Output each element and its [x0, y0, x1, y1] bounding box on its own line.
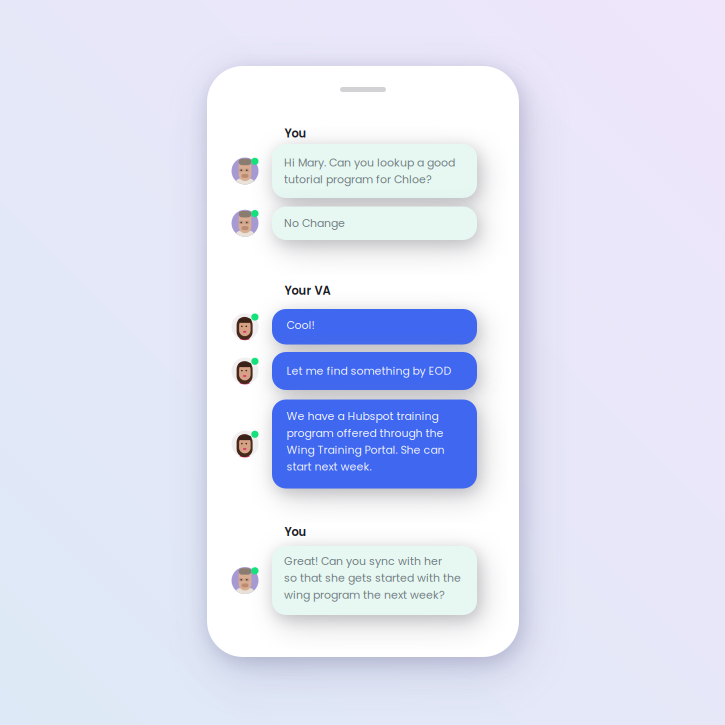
- staticText: Wing Training Portal. She can: [286, 442, 444, 457]
- button[interactable]: Cool!: [207, 66, 519, 657]
- button[interactable]: Hi Mary. Can you lookup a good: [207, 66, 519, 657]
- staticText: start next week.: [286, 459, 371, 474]
- staticText: program offered through the: [286, 425, 443, 441]
- button[interactable]: Great! Can you sync with her: [207, 66, 519, 657]
- staticText: You: [284, 125, 306, 142]
- staticText: Your VA: [284, 283, 330, 299]
- staticText: Great! Can you sync with her: [284, 553, 442, 569]
- staticText: Let me find something by EOD: [286, 363, 451, 379]
- button[interactable]: We have a Hubspot training: [207, 66, 519, 657]
- staticText: Hi Mary. Can you lookup a good: [284, 155, 455, 170]
- staticText: wing program the next week?: [284, 587, 445, 602]
- button[interactable]: No Change: [207, 66, 519, 657]
- staticText: tutorial program for Chloe?: [284, 172, 432, 187]
- staticText: so that she gets started with the: [284, 570, 461, 586]
- button[interactable]: Let me find something by EOD: [207, 66, 519, 657]
- staticText: Cool!: [286, 318, 314, 333]
- staticText: No Change: [284, 216, 345, 231]
- staticText: You: [284, 524, 306, 540]
- staticText: We have a Hubspot training: [286, 409, 438, 424]
